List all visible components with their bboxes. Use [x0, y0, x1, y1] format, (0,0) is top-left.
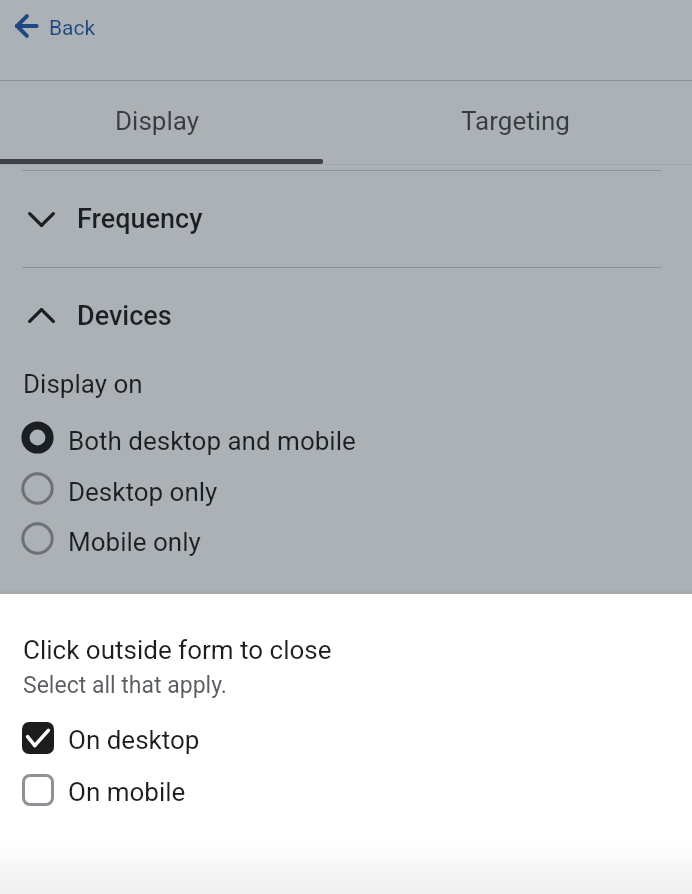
- button[interactable]: Display: [0, 80, 336, 164]
- button[interactable]: Mobile only: [0, 513, 692, 563]
- staticText: On mobile: [68, 777, 186, 807]
- button[interactable]: Both desktop and mobile: [0, 412, 692, 462]
- staticText: Back: [49, 16, 96, 41]
- button[interactable]: Devices: [0, 268, 692, 364]
- staticText: Frequency: [77, 203, 203, 235]
- staticText: Desktop only: [68, 477, 218, 507]
- button[interactable]: Back: [9, 5, 102, 46]
- staticText: Click outside form to close: [23, 635, 332, 665]
- button[interactable]: Targeting: [336, 80, 692, 164]
- staticText: Display: [115, 106, 199, 136]
- other: Back: [15, 14, 39, 38]
- button[interactable]: Frequency: [0, 171, 692, 267]
- button[interactable]: On desktop: [0, 712, 692, 764]
- staticText: Mobile only: [68, 527, 201, 557]
- button[interactable]: Close form: [0, 0, 692, 594]
- staticText: On desktop: [68, 725, 200, 755]
- staticText: Display on: [23, 369, 143, 399]
- button[interactable]: On mobile: [0, 764, 692, 816]
- button[interactable]: Desktop only: [0, 463, 692, 513]
- staticText: Select all that apply.: [23, 672, 227, 699]
- staticText: Devices: [77, 300, 172, 332]
- staticText: Targeting: [461, 106, 570, 136]
- staticText: Both desktop and mobile: [68, 426, 356, 456]
